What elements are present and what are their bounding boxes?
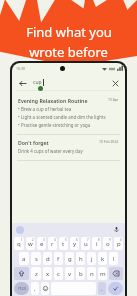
button[interactable]: Shift: [14, 267, 29, 280]
staticText: r: [51, 240, 54, 248]
staticText: 9: [109, 238, 111, 242]
staticText: u: [84, 240, 88, 248]
staticText: 15 Apr: [108, 97, 119, 102]
staticText: ,: [34, 285, 36, 293]
button[interactable]: y: [70, 237, 79, 250]
staticText: 1: [21, 238, 23, 242]
staticText: j: [91, 255, 93, 263]
staticText: t: [62, 240, 65, 248]
staticText: q: [17, 240, 21, 248]
button[interactable]: Evening Relaxation Routine: [12, 93, 125, 134]
staticText: o: [106, 240, 110, 248]
staticText: Evening Relaxation Routine: [18, 97, 88, 104]
staticText: l: [113, 255, 115, 263]
staticText: h: [79, 255, 83, 263]
button[interactable]: s: [31, 252, 41, 265]
button[interactable]: Backspace: [109, 267, 123, 280]
staticText: •: [18, 114, 21, 120]
staticText: v: [68, 270, 72, 278]
staticText: 4: [54, 238, 56, 242]
staticText: Brew a cup of herbal tea: [21, 106, 72, 112]
staticText: 10 Feb 2024: [99, 139, 119, 144]
button[interactable]: Back: [16, 77, 28, 89]
button[interactable]: Emoji: [41, 282, 49, 295]
staticText: y: [73, 240, 77, 248]
staticText: k: [101, 255, 105, 263]
staticText: f: [57, 255, 60, 263]
staticText: .: [101, 285, 103, 293]
button[interactable]: Voice input: [112, 225, 121, 234]
staticText: Light a scented candle and dim the light…: [21, 114, 106, 120]
staticText: c: [57, 270, 60, 278]
button[interactable]: Keyboard settings: [16, 226, 24, 234]
staticText: 7: [87, 238, 89, 242]
button[interactable]: u: [81, 237, 90, 250]
staticText: ?123: [18, 286, 26, 291]
staticText: Find what you: [26, 23, 112, 41]
button[interactable]: j: [87, 252, 96, 265]
staticText: 5: [65, 238, 67, 242]
button[interactable]: .: [98, 282, 106, 295]
button[interactable]: l: [109, 252, 118, 265]
button[interactable]: k: [98, 252, 107, 265]
button[interactable]: m: [98, 267, 107, 280]
staticText: n: [90, 270, 94, 278]
button[interactable]: Switch to numbers: [14, 282, 29, 295]
staticText: z: [35, 270, 38, 278]
staticText: b: [79, 270, 83, 278]
staticText: d: [46, 255, 50, 263]
button[interactable]: Enter: [108, 282, 123, 295]
staticText: Don't forget: [18, 139, 49, 146]
staticText: p: [117, 240, 121, 248]
button[interactable]: ,: [31, 282, 39, 295]
staticText: s: [35, 255, 38, 263]
button[interactable]: n: [87, 267, 96, 280]
staticText: Drink 4 cups of water every day: [18, 148, 83, 154]
staticText: 8: [98, 238, 100, 242]
staticText: •: [18, 122, 21, 128]
staticText: a: [22, 255, 26, 263]
staticText: wrote before: [29, 43, 108, 61]
button[interactable]: b: [76, 267, 85, 280]
staticText: 6: [76, 238, 78, 242]
button[interactable]: q: [14, 237, 24, 250]
button[interactable]: x: [43, 267, 52, 280]
staticText: 2: [32, 238, 34, 242]
button[interactable]: w: [26, 237, 35, 250]
staticText: cup: [33, 79, 42, 86]
staticText: Practise gentle stretching or yoga: [21, 122, 91, 128]
staticText: g: [68, 255, 72, 263]
button[interactable]: f: [54, 252, 63, 265]
staticText: m: [100, 270, 106, 278]
staticText: 0: [120, 238, 122, 242]
button[interactable]: c: [54, 267, 63, 280]
button[interactable]: p: [114, 237, 123, 250]
staticText: e: [40, 240, 44, 248]
button[interactable]: Clear search: [109, 77, 121, 89]
staticText: 10:30: [16, 66, 25, 71]
button[interactable]: v: [65, 267, 74, 280]
staticText: 3: [43, 238, 45, 242]
button[interactable]: g: [65, 252, 74, 265]
button[interactable]: i: [92, 237, 101, 250]
staticText: i: [96, 240, 98, 248]
button[interactable]: e: [37, 237, 46, 250]
button[interactable]: o: [103, 237, 112, 250]
staticText: x: [46, 270, 50, 278]
staticText: w: [28, 240, 33, 248]
staticText: •: [18, 106, 21, 112]
button[interactable]: r: [48, 237, 57, 250]
button[interactable]: h: [76, 252, 85, 265]
button[interactable]: a: [19, 252, 29, 265]
button[interactable]: d: [43, 252, 52, 265]
button[interactable]: t: [59, 237, 68, 250]
button[interactable]: Don't forget: [12, 135, 125, 160]
button[interactable]: z: [31, 267, 41, 280]
